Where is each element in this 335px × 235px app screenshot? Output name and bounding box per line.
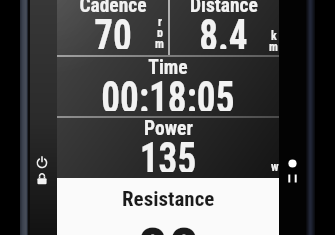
- staticText: m: [269, 40, 278, 51]
- staticText: r: [158, 15, 162, 26]
- staticText: 00:18:05: [101, 73, 235, 111]
- button[interactable]: Power: [57, 117, 279, 178]
- staticText: w: [271, 160, 279, 171]
- staticText: Time: [148, 56, 188, 79]
- staticText: Cadence: [79, 0, 147, 17]
- staticText: Power: [144, 117, 193, 140]
- button[interactable]: Record: [286, 157, 299, 170]
- button[interactable]: Pause: [286, 172, 299, 185]
- staticText: 70: [94, 11, 132, 49]
- button[interactable]: Time: [57, 56, 279, 117]
- staticText: 8.4: [199, 11, 248, 49]
- staticText: p: [157, 26, 163, 37]
- staticText: Resistance: [122, 187, 215, 212]
- button[interactable]: Power: [35, 155, 49, 169]
- staticText: k: [271, 29, 277, 40]
- staticText: Distance: [190, 0, 258, 17]
- button[interactable]: Cadence: [57, 0, 168, 55]
- staticText: m: [155, 37, 164, 48]
- button[interactable]: Resistance: [57, 178, 279, 235]
- button[interactable]: Lock: [36, 172, 48, 186]
- staticText: 88: [137, 214, 200, 235]
- button[interactable]: Distance: [168, 0, 279, 55]
- staticText: 135: [140, 134, 196, 172]
